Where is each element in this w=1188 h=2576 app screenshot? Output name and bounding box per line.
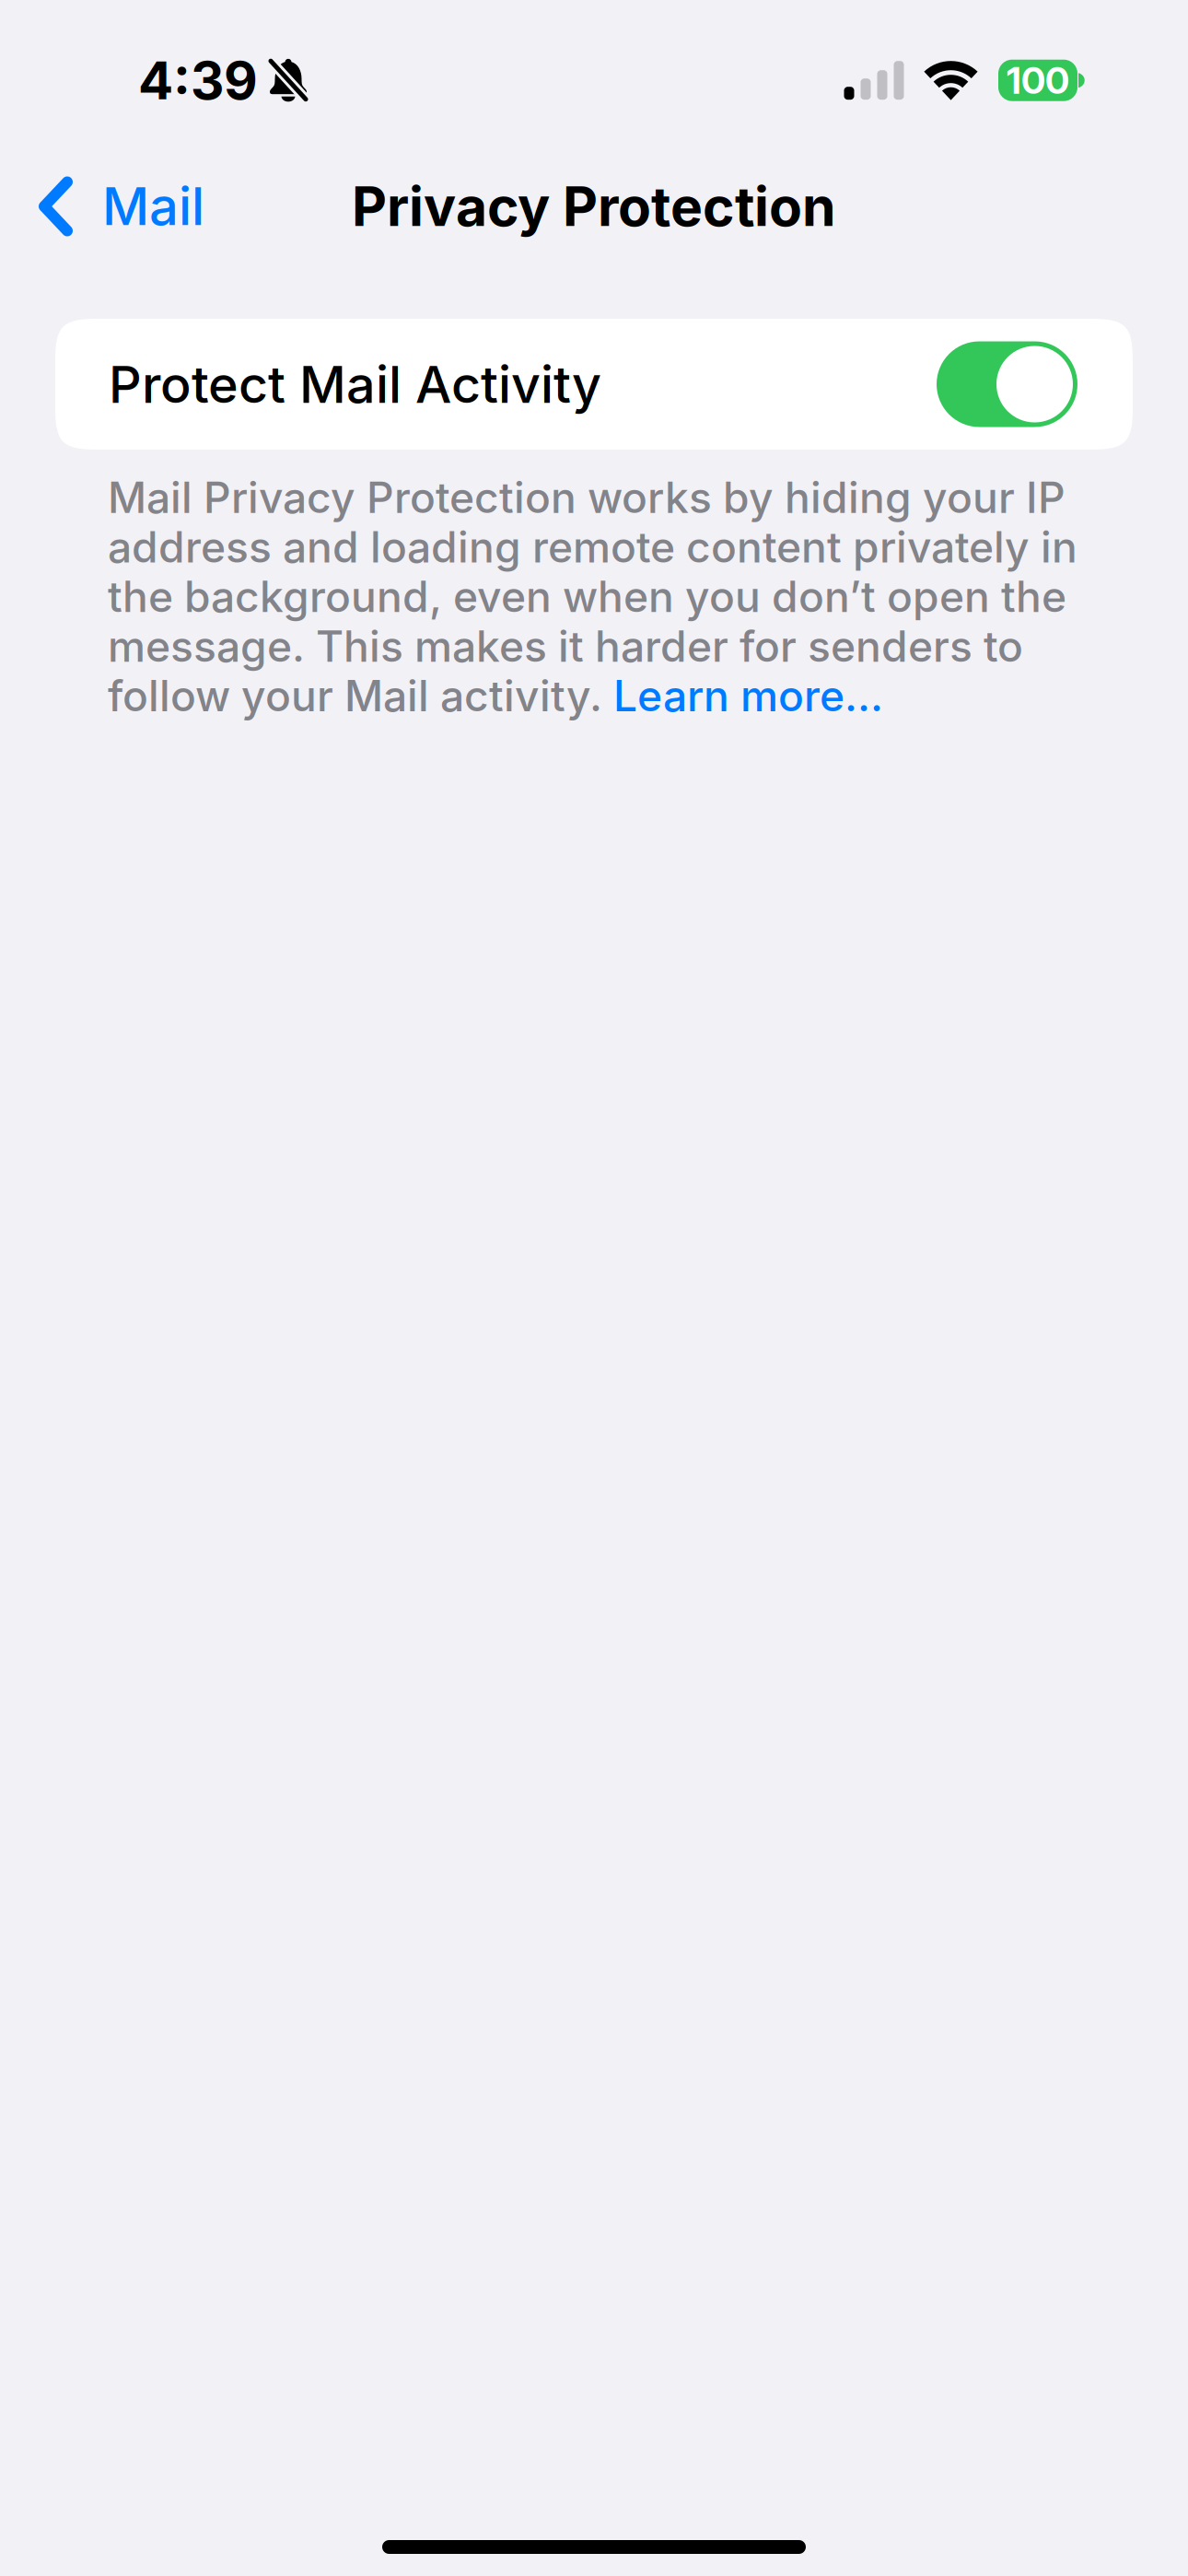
staticText: Protect Mail Activity [109,353,601,415]
staticText: Mail [102,175,204,238]
button[interactable]: Protect Mail Activity [55,319,1133,450]
button[interactable]: Learn more about Mail Privacy Protection [615,662,882,711]
staticText: Mail Privacy Protection works by hiding … [108,472,1077,721]
staticText: 4:39 [138,49,258,112]
button[interactable]: Back to Mail [0,162,223,251]
staticText: Privacy Protection [352,174,836,239]
staticText: 100 [1007,58,1069,103]
